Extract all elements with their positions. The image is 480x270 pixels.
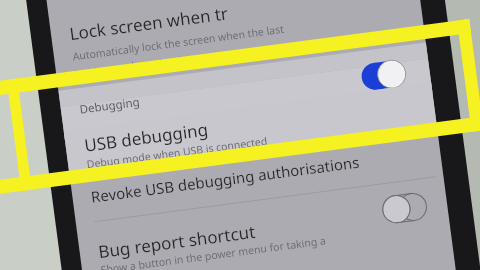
- button[interactable]: USB debugging setting highlighted on pho…: [0, 0, 480, 270]
